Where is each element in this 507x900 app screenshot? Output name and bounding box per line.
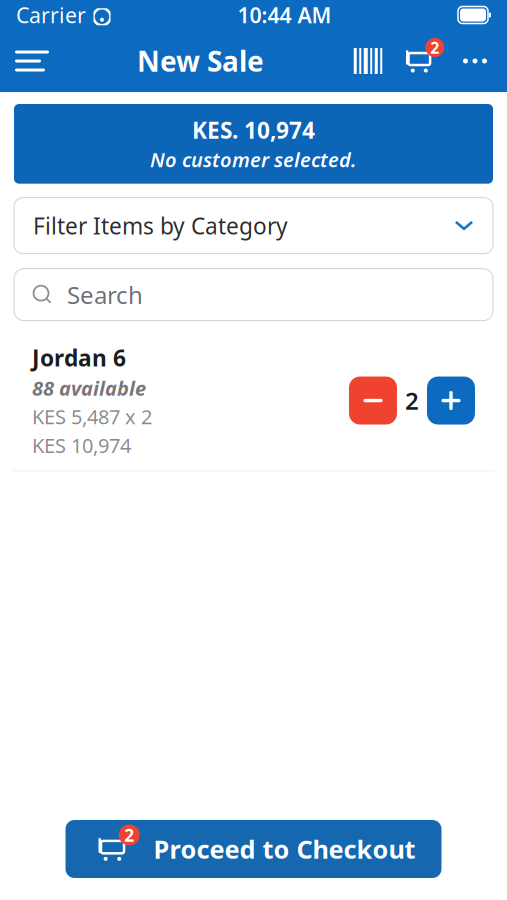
button[interactable]: Increase quantity [427,377,475,425]
staticText: Proceed to Checkout [153,832,415,866]
staticText: 2 [405,385,419,416]
staticText: Filter Items by Category [33,211,288,241]
button[interactable]: Cart, 2 items [393,33,449,89]
button[interactable]: Search [14,269,493,321]
button[interactable]: Filter Items by Category [14,198,493,254]
button[interactable]: KES. 10,974 [14,104,493,184]
staticText: Carrier [16,1,86,29]
button[interactable]: 2 [65,820,441,878]
button[interactable]: Menu [6,33,58,89]
staticText: KES 5,487 x 2 [32,403,152,430]
button[interactable]: Decrease quantity [349,377,397,425]
staticText: 2 [430,37,439,58]
staticText: 88 available [32,375,146,401]
staticText: KES. 10,974 [192,115,315,145]
staticText: Jordan 6 [32,343,126,373]
staticText: KES 10,974 [32,432,131,458]
button[interactable]: Scan barcode [343,33,393,89]
staticText: No customer selected. [150,146,357,173]
staticText: 2 [124,823,134,846]
staticText: 10:44 AM [237,1,331,29]
staticText: Search [67,279,143,311]
button[interactable]: More options [449,33,501,89]
staticText: New Sale [137,42,264,80]
